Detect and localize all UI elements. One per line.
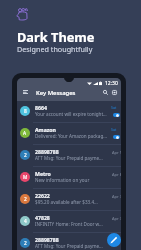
button[interactable]: A bbox=[17, 123, 121, 145]
button[interactable]: Open navigation menu bbox=[20, 88, 30, 96]
staticText: M bbox=[23, 174, 28, 181]
staticText: New information on your bbox=[35, 177, 107, 183]
staticText: ATT Msg: Your Prepaid payme... bbox=[35, 243, 107, 249]
staticText: 28898788 bbox=[35, 148, 105, 155]
staticText: 22622 bbox=[35, 192, 105, 199]
button[interactable]: Compose message bbox=[107, 233, 121, 247]
staticText: Apr 3 bbox=[112, 216, 121, 221]
staticText: Apr 9 bbox=[112, 150, 121, 155]
button[interactable]: Notification toggle bbox=[113, 135, 120, 139]
staticText: Dark Theme bbox=[17, 28, 95, 45]
staticText: ATT Msg: Your Prepaid payme... bbox=[35, 155, 107, 161]
button[interactable]: M bbox=[17, 167, 121, 189]
button[interactable]: 2 bbox=[17, 189, 121, 211]
staticText: Designed thoughtfully bbox=[17, 44, 93, 54]
staticText: Apr 1 bbox=[112, 238, 121, 243]
staticText: 4 bbox=[24, 218, 27, 225]
staticText: Apr 3 bbox=[112, 194, 121, 199]
staticText: 8664 bbox=[35, 104, 105, 111]
staticText: Delivered: Your Amazon packag... bbox=[35, 133, 107, 139]
staticText: 47828 bbox=[35, 214, 105, 221]
button[interactable]: 4 bbox=[17, 211, 121, 233]
staticText: 2 bbox=[24, 196, 27, 203]
staticText: $95.20 available after $33.4... bbox=[35, 199, 107, 205]
staticText: Sat bbox=[111, 105, 117, 110]
staticText: Amazon bbox=[35, 126, 105, 133]
button[interactable]: 2 bbox=[17, 233, 121, 250]
button[interactable]: Notification toggle bbox=[113, 113, 120, 117]
staticText: 12:30 bbox=[105, 80, 118, 87]
staticText: Metro bbox=[35, 170, 105, 177]
button[interactable]: 2 bbox=[17, 145, 121, 167]
staticText: Apr 8 bbox=[112, 172, 121, 177]
staticText: Your account will expire tonight ... bbox=[35, 111, 107, 117]
staticText: 2 bbox=[24, 152, 27, 159]
staticText: 8 bbox=[24, 108, 27, 115]
staticText: 28898788 bbox=[35, 236, 105, 243]
button[interactable]: Search bbox=[101, 88, 109, 96]
staticText: A bbox=[23, 130, 27, 137]
button[interactable]: Archive bbox=[110, 88, 118, 96]
staticText: Sat bbox=[111, 127, 117, 132]
button[interactable]: 8 bbox=[17, 101, 121, 123]
staticText: INFINITY Home: Front Door w... bbox=[35, 221, 107, 227]
staticText: Key Messages bbox=[36, 89, 76, 97]
staticText: 2 bbox=[24, 240, 27, 247]
